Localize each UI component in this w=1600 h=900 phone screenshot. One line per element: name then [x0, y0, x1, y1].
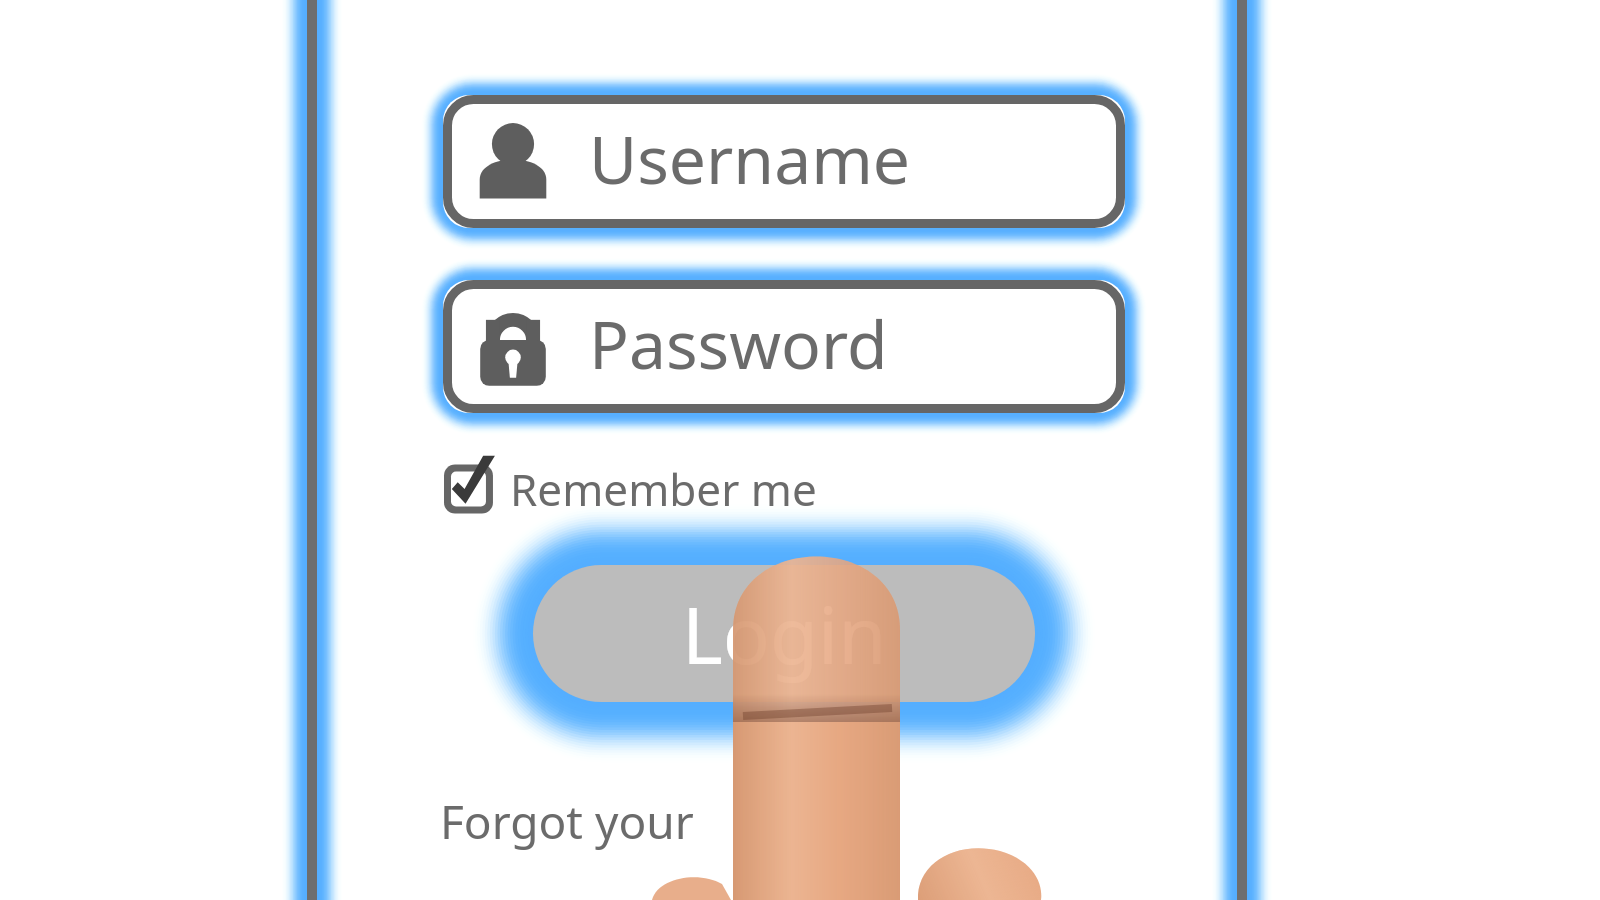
- button[interactable]: Forgot your password?: [440, 790, 890, 852]
- button[interactable]: Remember me: [440, 452, 800, 522]
- staticText: Remember me: [510, 459, 817, 519]
- button[interactable]: Username: [443, 95, 1125, 228]
- staticText: Forgot your password?: [440, 790, 890, 852]
- button[interactable]: Login: [533, 565, 1035, 702]
- button[interactable]: Password: [443, 280, 1125, 413]
- staticText: Username: [589, 113, 911, 203]
- staticText: Login: [682, 581, 887, 687]
- staticText: Password: [589, 298, 888, 388]
